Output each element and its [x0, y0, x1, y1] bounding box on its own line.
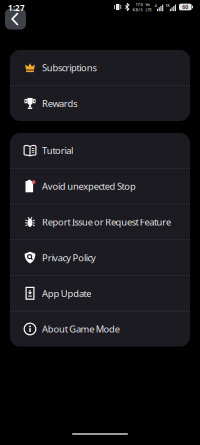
button[interactable]: Rewards [10, 86, 190, 121]
staticText: LTE [145, 7, 151, 12]
button[interactable]: Back [5, 8, 26, 29]
button[interactable]: Privacy Policy [10, 240, 190, 275]
staticText: 4 [154, 3, 156, 8]
staticText: 1:27 [8, 3, 25, 13]
staticText: Tutorial [42, 144, 73, 157]
staticText: 17.0 [135, 2, 142, 7]
button[interactable]: About Game Mode [10, 311, 190, 346]
staticText: Privacy Policy [42, 251, 96, 264]
staticText: Vo [145, 2, 149, 7]
staticText: App Update [42, 287, 91, 299]
staticText: 60 [182, 3, 188, 11]
button[interactable]: Report Issue or Request Feature [10, 204, 190, 239]
button[interactable]: Avoid unexpected Stop [10, 169, 190, 204]
button[interactable]: Tutorial [10, 133, 190, 168]
staticText: Subscriptions [42, 61, 96, 74]
button[interactable]: Subscriptions [10, 50, 190, 85]
staticText: About Game Mode [42, 323, 120, 335]
staticText: Report Issue or Request Feature [42, 216, 171, 228]
button[interactable]: App Update [10, 276, 190, 311]
staticText: KB/S [132, 7, 142, 12]
staticText: Rewards [42, 97, 77, 110]
staticText: 18 [165, 3, 169, 8]
staticText: Avoid unexpected Stop [42, 180, 136, 192]
